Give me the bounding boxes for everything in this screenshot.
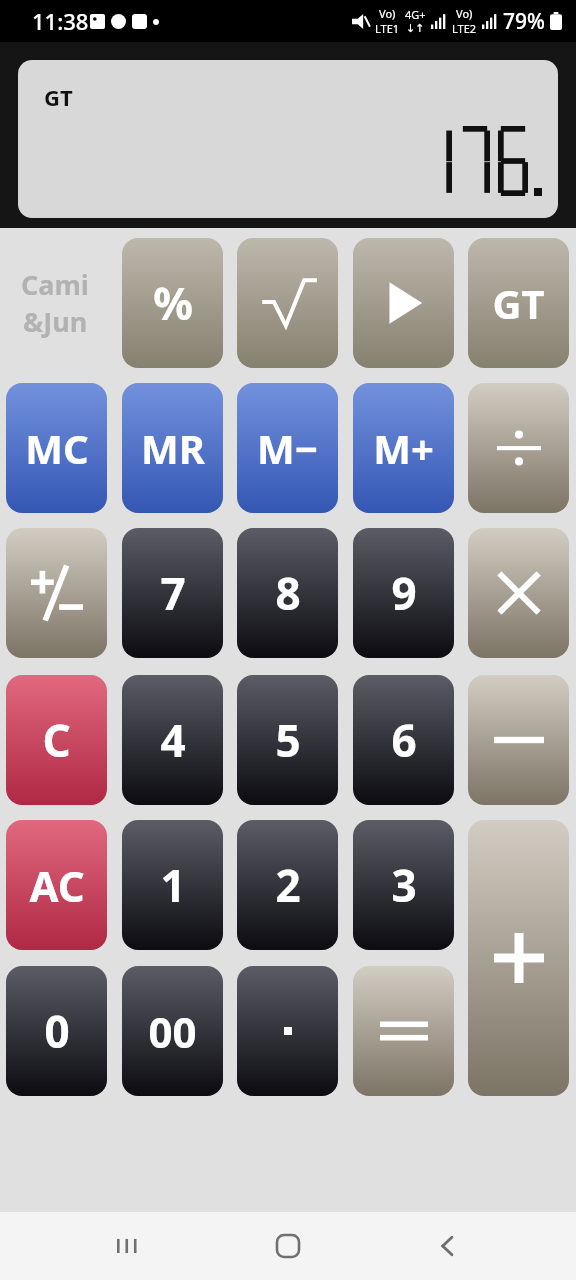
button[interactable]: 9 [353, 528, 454, 658]
button[interactable]: M+ [353, 383, 454, 513]
button[interactable] [353, 966, 454, 1096]
button[interactable]: MR [122, 383, 223, 513]
staticText: 4 [160, 710, 186, 770]
button[interactable]: 6 [353, 675, 454, 805]
button[interactable]: Plus [468, 820, 569, 1096]
button[interactable]: 0 [6, 966, 107, 1096]
button[interactable]: 2 [237, 820, 338, 950]
staticText: M+ [373, 421, 434, 475]
button[interactable]: 1 [122, 820, 223, 950]
button[interactable]: GT [468, 238, 569, 368]
button[interactable] [6, 528, 107, 658]
button[interactable]: Back [416, 1214, 480, 1278]
button[interactable] [237, 238, 338, 368]
button[interactable]: 8 [237, 528, 338, 658]
button[interactable]: M− [237, 383, 338, 513]
button[interactable]: Recent apps [96, 1214, 160, 1278]
staticText: M− [257, 421, 318, 475]
button[interactable] [468, 528, 569, 658]
staticText: 5 [275, 710, 301, 770]
button[interactable] [353, 238, 454, 368]
staticText: 8 [275, 563, 301, 623]
staticText: C [42, 710, 71, 770]
staticText: GT [44, 82, 73, 112]
button[interactable]: Home [256, 1214, 320, 1278]
staticText: ↓↑ [406, 22, 425, 35]
staticText: 6 [391, 710, 417, 770]
staticText: 11:38 [32, 6, 89, 36]
staticText: 4G+ [405, 7, 426, 22]
staticText: AC [29, 857, 85, 914]
staticText: MR [141, 421, 205, 475]
staticText: 0 [44, 1001, 70, 1061]
staticText: 1 [160, 855, 186, 915]
staticText: MC [25, 421, 89, 475]
button[interactable]: 7 [122, 528, 223, 658]
button[interactable] [468, 383, 569, 513]
button[interactable]: % [122, 238, 223, 368]
button[interactable]: MC [6, 383, 107, 513]
staticText: 3 [391, 855, 417, 915]
button[interactable]: 5 [237, 675, 338, 805]
button[interactable]: 4 [122, 675, 223, 805]
button[interactable] [468, 675, 569, 805]
button[interactable]: 3 [353, 820, 454, 950]
button[interactable] [237, 966, 338, 1096]
staticText: 00 [148, 1003, 197, 1060]
staticText: Vo) [456, 6, 473, 21]
button[interactable]: AC [6, 820, 107, 950]
staticText: 7 [160, 563, 186, 623]
staticText: 79% [503, 7, 545, 36]
staticText: Vo) [379, 6, 396, 21]
staticText: LTE1 [375, 21, 400, 36]
staticText: 9 [391, 563, 417, 623]
staticText: % [153, 273, 193, 333]
staticText: &Jun [23, 303, 88, 340]
button[interactable]: C [6, 675, 107, 805]
staticText: GT [492, 276, 545, 330]
staticText: LTE2 [452, 21, 477, 36]
staticText: Cami [21, 266, 89, 303]
button[interactable]: 00 [122, 966, 223, 1096]
staticText: 2 [275, 855, 301, 915]
